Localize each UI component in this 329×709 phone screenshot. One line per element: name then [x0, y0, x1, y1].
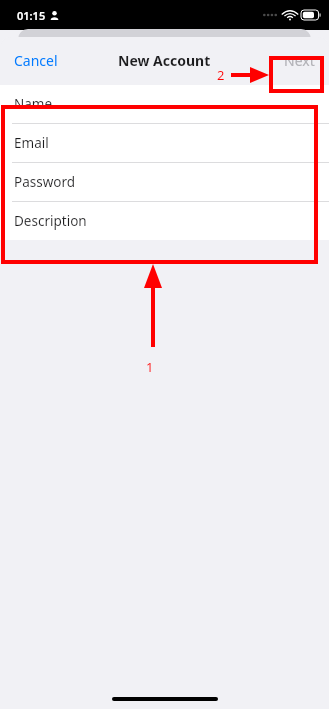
- staticText: New Account: [118, 51, 211, 70]
- button[interactable]: Next: [270, 43, 329, 78]
- staticText: Next: [284, 51, 315, 70]
- other: Battery 74 percent: [301, 10, 321, 20]
- button[interactable]: Name: [0, 85, 329, 124]
- button[interactable]: Cancel: [0, 43, 72, 78]
- staticText: 2: [217, 66, 225, 84]
- other: Profile: [50, 11, 59, 20]
- button[interactable]: Description: [0, 202, 329, 240]
- staticText: Description: [14, 212, 87, 230]
- staticText: Cancel: [14, 51, 58, 70]
- button[interactable]: Password: [0, 163, 329, 202]
- other: Wi-Fi: [284, 11, 296, 20]
- staticText: 01:15: [17, 8, 46, 23]
- staticText: Name: [14, 95, 53, 113]
- staticText: Password: [14, 173, 76, 191]
- staticText: 1: [146, 358, 154, 376]
- button[interactable]: Email: [0, 124, 329, 163]
- staticText: Email: [14, 134, 49, 152]
